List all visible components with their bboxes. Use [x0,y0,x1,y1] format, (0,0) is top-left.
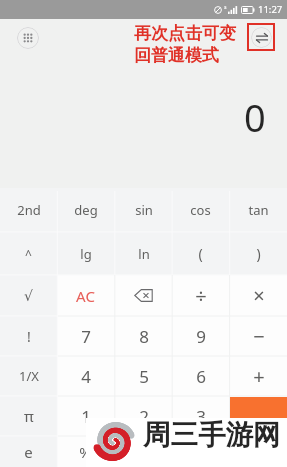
button[interactable]: 2nd [0,188,57,232]
staticText: 6 [196,365,206,388]
button[interactable]: deg [57,188,114,232]
button[interactable]: 6 [172,356,229,396]
button[interactable]: ) [230,232,287,275]
staticText: 1/X [19,367,39,385]
button[interactable]: 5 [115,356,172,396]
staticText: π [24,406,34,426]
button[interactable]: = [230,397,287,467]
staticText: tan [248,201,269,219]
button[interactable]: π [0,396,57,436]
button[interactable]: 1/X [0,356,57,396]
staticText: + [253,363,265,390]
button[interactable]: 8 [115,316,172,356]
staticText: 9 [196,325,206,348]
button[interactable]: ! [0,316,57,356]
button[interactable]: tan [230,188,287,232]
staticText: 4 [81,365,91,388]
staticText: ³ [224,5,227,15]
button[interactable]: ^ [0,232,57,275]
button[interactable]: AC [57,275,114,316]
staticText: deg [74,201,98,219]
staticText: 周三手游网 [143,418,281,453]
staticText: 1 [81,405,91,428]
button[interactable]: e [0,436,57,467]
button[interactable]: 0 [115,436,172,467]
button[interactable]: 2 [115,396,172,436]
button[interactable]: − [230,316,287,356]
staticText: ! [27,327,31,346]
staticText: ) [256,244,261,263]
staticText: − [253,323,265,350]
button[interactable]: 1 [57,396,114,436]
button[interactable]: √ [0,275,57,316]
button[interactable]: Toggle scientific mode [247,23,275,51]
staticText: ^ [25,246,32,262]
button[interactable]: 7 [57,316,114,356]
button[interactable]: × [230,275,287,316]
button[interactable]: ÷ [172,275,229,316]
staticText: ln [138,245,150,263]
staticText: 3 [196,405,206,428]
staticText: sin [135,201,153,219]
button[interactable]: . [172,436,229,467]
button[interactable]: Delete [115,275,172,316]
staticText: 2 [139,405,149,428]
staticText: ÷ [195,282,207,309]
staticText: AC [76,286,95,306]
button[interactable]: lg [57,232,114,275]
staticText: 5 [139,365,149,388]
button[interactable]: sin [115,188,172,232]
staticText: × [253,282,265,309]
staticText: 8 [139,325,149,348]
button[interactable]: % [57,436,114,467]
staticText: 再次点击可变 回普通模式 [134,23,236,66]
button[interactable]: ln [115,232,172,275]
staticText: = [253,419,264,445]
staticText: e [24,442,33,462]
staticText: lg [80,245,92,263]
staticText: 0 [244,91,266,137]
button[interactable]: Menu [17,27,39,49]
staticText: 7 [81,325,91,348]
button[interactable]: 3 [172,396,229,436]
staticText: 11:27 [258,3,283,16]
staticText: % [79,442,92,462]
button[interactable]: 4 [57,356,114,396]
staticText: √ [24,288,33,304]
staticText: cos [190,201,211,219]
staticText: ( [198,244,203,263]
button[interactable]: ( [172,232,229,275]
staticText: 2nd [17,201,41,219]
button[interactable]: + [230,356,287,396]
button[interactable]: cos [172,188,229,232]
staticText: 0 [139,440,149,463]
button[interactable]: 9 [172,316,229,356]
